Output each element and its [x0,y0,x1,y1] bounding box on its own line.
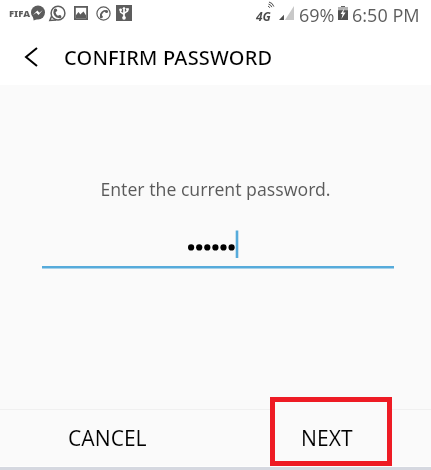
button[interactable]: CANCEL [29,410,185,467]
staticText: 4G [256,8,271,24]
staticText: Enter the current password. [0,177,431,201]
staticText: CANCEL [68,424,147,453]
button[interactable]: Navigate up [10,36,52,78]
staticText: 6:50 PM [352,3,420,28]
staticText: 69% [299,3,335,28]
button[interactable]: NEXT [275,402,387,461]
staticText: CONFIRM PASSWORD [64,44,273,71]
staticText: NEXT [301,424,353,453]
staticText: FIFA [9,7,31,20]
